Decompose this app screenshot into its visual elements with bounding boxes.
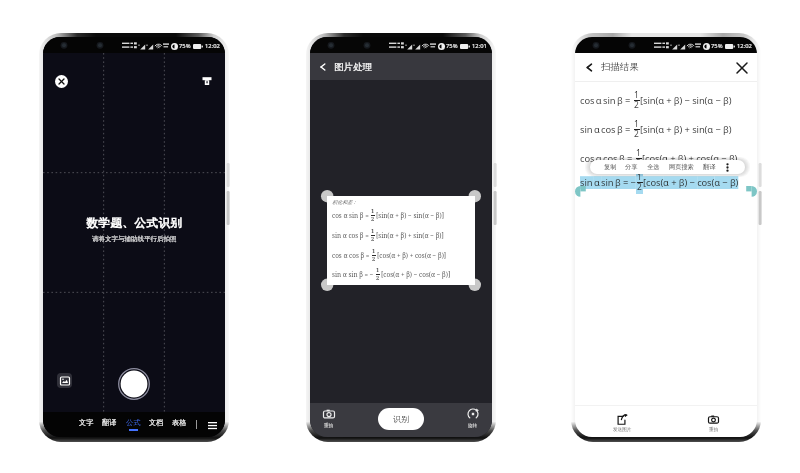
- staticText: sin α cos β =: [580, 123, 633, 136]
- staticText: [sin(α + β) − sin(α − β): [640, 94, 732, 107]
- button[interactable]: More options: [724, 160, 731, 174]
- staticText: cos α sin β =: [580, 94, 633, 107]
- staticText: sin α sin β = −: [332, 270, 374, 279]
- staticText: [cos(α + β) − cos(α − β)]: [381, 270, 451, 279]
- staticText: 翻译: [102, 418, 117, 427]
- button[interactable]: 全选: [647, 160, 660, 174]
- staticText: 积化和差：: [332, 199, 357, 205]
- staticText: cos α cos β =: [580, 152, 635, 165]
- staticText: [cos(α + β) + cos(α − β)]: [377, 251, 447, 260]
- button[interactable]: 文字: [79, 412, 94, 437]
- staticText: 旋转: [468, 423, 478, 429]
- staticText: 2: [372, 255, 376, 263]
- staticText: cos α cos β =: [332, 251, 370, 260]
- staticText: 2: [634, 99, 639, 111]
- staticText: [sin(α + β) + sin(α − β)]: [376, 231, 444, 240]
- staticText: sin α cos β =: [332, 231, 369, 240]
- button[interactable]: 发送图片: [613, 414, 632, 433]
- staticText: 公式: [126, 418, 141, 427]
- staticText: 1: [376, 266, 380, 274]
- staticText: 12:02: [737, 42, 752, 50]
- staticText: 2: [376, 274, 380, 282]
- button[interactable]: 重拍: [708, 414, 719, 433]
- staticText: 全选: [647, 163, 660, 171]
- staticText: 2: [634, 128, 639, 140]
- button[interactable]: 表格: [172, 412, 187, 437]
- staticText: 1: [634, 118, 639, 130]
- staticText: 2: [637, 181, 642, 193]
- staticText: 75%: [179, 42, 191, 50]
- button[interactable]: 网页搜索: [669, 160, 694, 174]
- button[interactable]: 分享: [625, 160, 638, 174]
- button[interactable]: 图片处理: [318, 53, 492, 80]
- staticText: 1: [371, 227, 375, 235]
- staticText: 复制: [604, 163, 617, 171]
- staticText: 数学题、公式识别: [86, 216, 182, 230]
- staticText: 1: [637, 171, 642, 183]
- button[interactable]: Menu: [205, 418, 219, 432]
- staticText: 图片处理: [334, 61, 372, 73]
- staticText: 12:02: [205, 42, 220, 50]
- staticText: [sin(α + β) + sin(α − β): [640, 123, 732, 136]
- button[interactable]: 翻译: [102, 412, 117, 437]
- button[interactable]: Close: [55, 75, 68, 88]
- staticText: 1: [371, 207, 375, 215]
- staticText: [sin(α + β) − sin(α − β)]: [376, 211, 444, 220]
- staticText: 发送图片: [613, 427, 632, 433]
- staticText: cos α sin β =: [332, 211, 369, 220]
- staticText: 识别: [393, 414, 409, 424]
- button[interactable]: 旋转: [467, 408, 479, 429]
- staticText: 75%: [446, 42, 458, 50]
- button[interactable]: Flashlight: [200, 74, 214, 88]
- staticText: 2: [371, 215, 375, 223]
- button[interactable]: Close: [735, 61, 748, 74]
- staticText: 请将文字与辅助线平行后拍照: [92, 235, 177, 243]
- button[interactable]: 翻译: [703, 160, 716, 174]
- staticText: 重拍: [709, 427, 719, 433]
- button[interactable]: Shutter: [118, 368, 150, 400]
- staticText: 75%: [711, 42, 723, 50]
- staticText: 文字: [79, 418, 94, 427]
- staticText: 文档: [149, 418, 164, 427]
- staticText: 扫描结果: [601, 61, 639, 73]
- button[interactable]: Gallery: [57, 373, 72, 388]
- button[interactable]: 识别: [378, 408, 424, 430]
- staticText: 重拍: [324, 423, 334, 429]
- staticText: 1: [372, 247, 376, 255]
- button[interactable]: 重拍: [323, 408, 335, 429]
- staticText: 翻译: [703, 163, 716, 171]
- staticText: 12:01: [472, 42, 487, 50]
- staticText: 分享: [625, 163, 638, 171]
- staticText: 表格: [172, 418, 187, 427]
- staticText: 1: [636, 147, 641, 159]
- staticText: 网页搜索: [669, 163, 694, 171]
- button[interactable]: 复制: [604, 160, 617, 174]
- staticText: 1: [634, 89, 639, 101]
- button[interactable]: 公式: [126, 412, 141, 437]
- staticText: 2: [371, 235, 375, 243]
- button[interactable]: 文档: [149, 412, 164, 437]
- staticText: [cos(α + β) + cos(α − β): [642, 152, 738, 165]
- staticText: [cos(α + β) − cos(α − β): [643, 176, 739, 189]
- staticText: 2: [636, 157, 641, 169]
- staticText: sin α sin β = −: [580, 176, 636, 189]
- button[interactable]: Back: [584, 62, 595, 73]
